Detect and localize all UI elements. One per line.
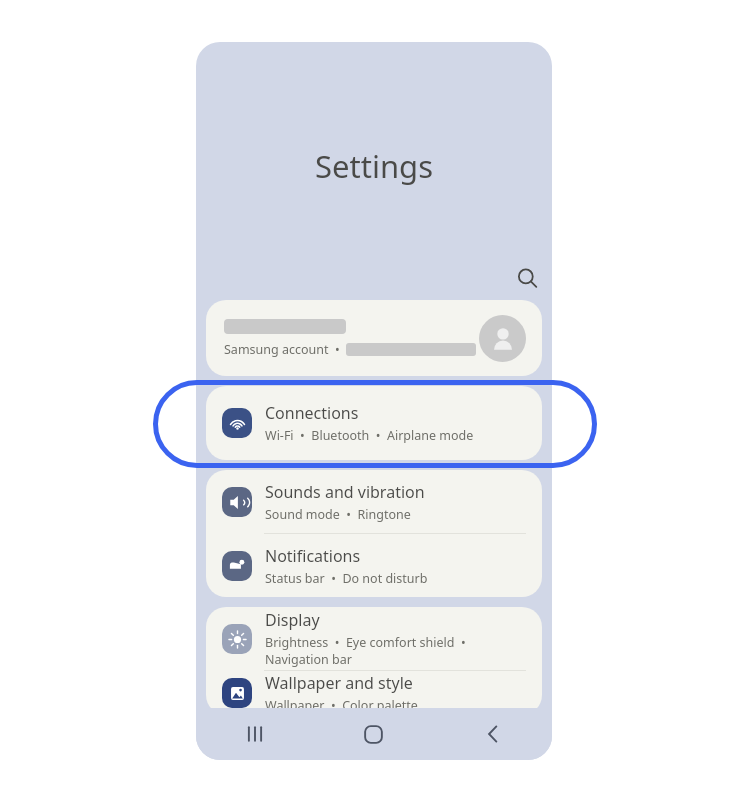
staticText: Notifications [265,545,361,567]
button[interactable]: Connections highlighted [150,378,600,470]
button[interactable]: Recents [196,708,314,760]
staticText: Wallpaper • Color palette [265,697,418,714]
staticText: Sounds and vibration [265,481,425,503]
button[interactable]: Back [433,708,552,760]
button[interactable]: Sounds and vibration [206,470,542,533]
button[interactable]: Connections [206,386,542,460]
staticText: Display [265,609,320,631]
staticText: Wallpaper and style [265,672,413,694]
staticText: Status bar • Do not disturb [265,570,428,587]
button[interactable]: Home [314,708,433,760]
button[interactable]: Search [506,257,548,299]
button[interactable]: Samsung account • [206,300,542,376]
button[interactable]: Notifications [206,534,542,597]
staticText: Samsung account • [224,341,340,358]
staticText: Brightness • Eye comfort shield • Naviga… [265,634,528,668]
button[interactable]: Wallpaper and style [206,671,542,715]
button[interactable]: Display [206,607,542,670]
staticText: Connections [265,402,359,424]
staticText: Sound mode • Ringtone [265,506,411,523]
staticText: Wi-Fi • Bluetooth • Airplane mode [265,427,474,444]
staticText: Settings [315,145,433,187]
